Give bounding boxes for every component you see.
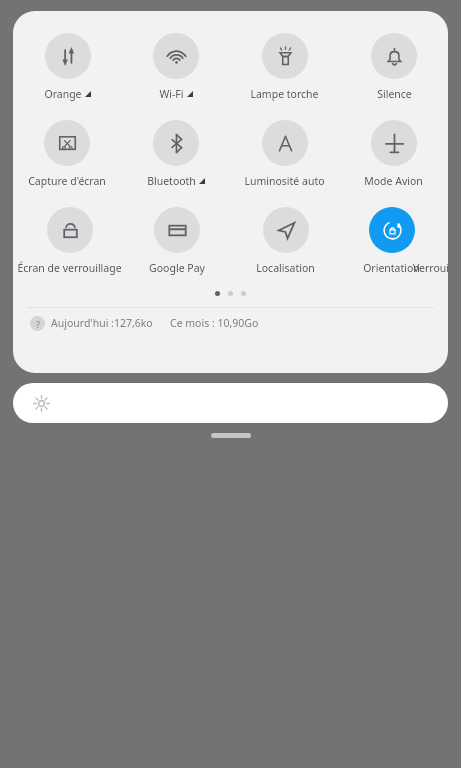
staticText: Capture d'écran <box>28 174 106 188</box>
button[interactable]: Localisation <box>256 207 315 275</box>
button[interactable]: Wi-Fi <box>153 33 199 101</box>
staticText: Localisation <box>256 261 315 275</box>
button[interactable]: Brightness slider <box>13 383 448 423</box>
staticText: Mode Avion <box>364 174 423 188</box>
button[interactable]: Capture d'écran <box>28 120 106 188</box>
staticText: Bluetooth <box>147 174 196 188</box>
staticText: Aujourd'hui :127,6ko <box>51 316 153 330</box>
button[interactable]: Data usage info <box>30 316 45 331</box>
staticText: Google Pay <box>149 261 205 275</box>
button[interactable]: Écran de verrouillage <box>17 207 122 275</box>
staticText: Lampe torche <box>250 87 319 101</box>
button[interactable]: Mode Avion <box>364 120 423 188</box>
button[interactable]: Google Pay <box>149 207 205 275</box>
staticText: ? <box>36 318 40 330</box>
staticText: Orientation <box>363 261 420 275</box>
button[interactable]: Bluetooth <box>147 120 205 188</box>
staticText: Verrouillage <box>413 261 448 275</box>
staticText: Orange <box>44 87 82 101</box>
button[interactable]: Lampe torche <box>250 33 319 101</box>
staticText: Luminosité auto <box>244 174 325 188</box>
staticText: Wi-Fi <box>159 87 184 101</box>
staticText: Silence <box>377 87 412 101</box>
staticText: Ce mois : 10,90Go <box>170 316 259 330</box>
button[interactable]: Orange <box>44 33 91 101</box>
button[interactable]: Orientation <box>363 207 420 275</box>
button[interactable]: Silence <box>371 33 417 101</box>
button[interactable]: Luminosité auto <box>244 120 325 188</box>
staticText: Écran de verrouillage <box>17 261 122 275</box>
